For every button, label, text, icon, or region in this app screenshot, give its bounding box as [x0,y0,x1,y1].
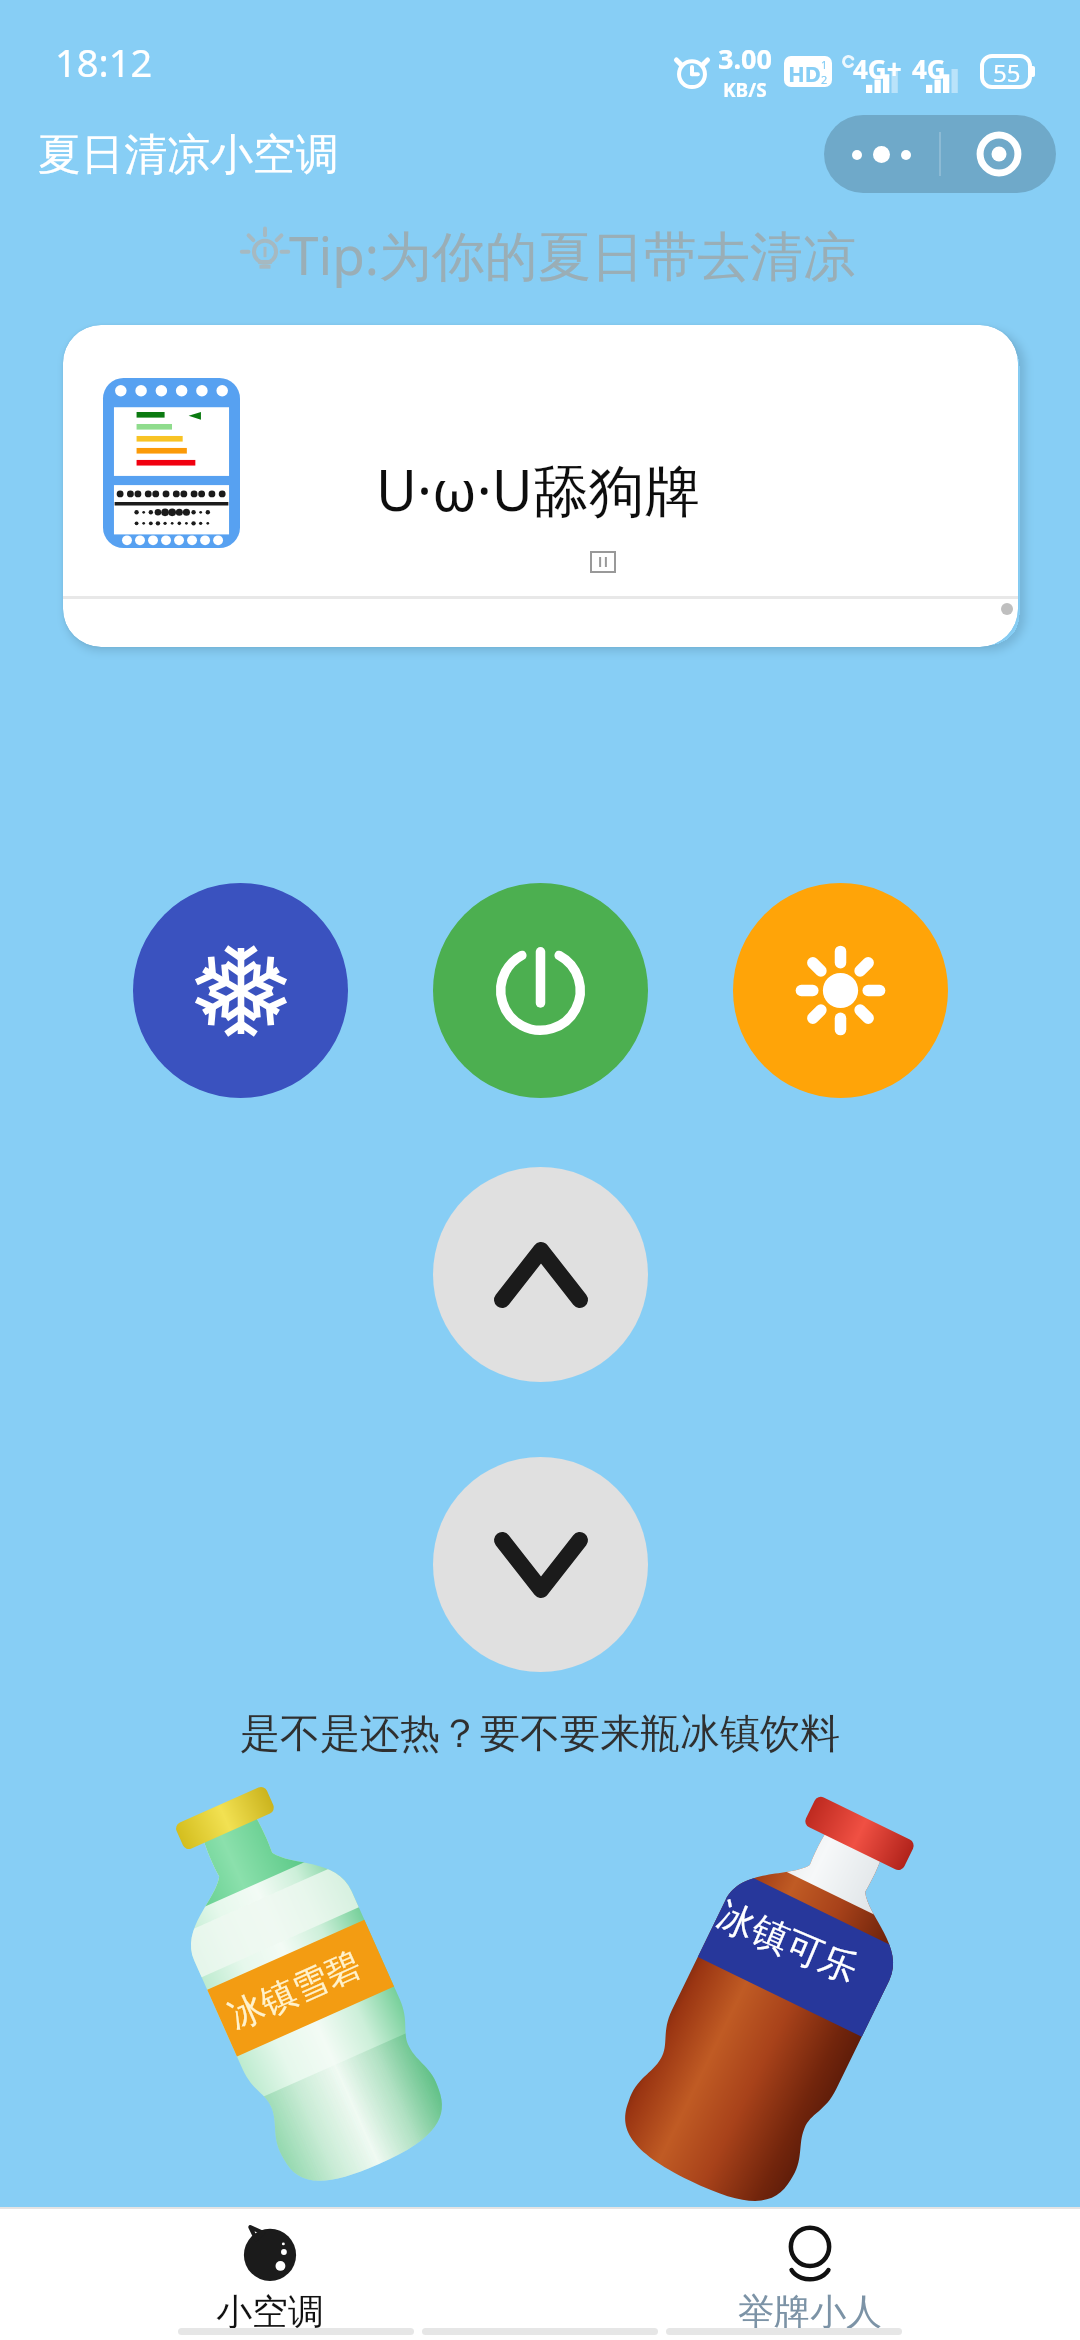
staticText: 4G+ [853,51,902,86]
staticText: 夏日清凉小空调 [38,128,339,182]
button[interactable]: Close [941,115,1056,193]
button[interactable]: U·ω·U舔狗牌 [63,325,1018,647]
button[interactable]: 小空调 [0,2209,540,2328]
staticText: HD [788,58,821,85]
button[interactable]: Heat mode [733,883,948,1098]
button[interactable]: 冰镇可乐 [664,1798,892,2203]
staticText: 小空调 [216,2289,324,2328]
staticText: 举牌小人 [738,2289,882,2328]
staticText: 冰镇雪碧 [222,1942,367,2039]
button[interactable]: Increase temperature [433,1167,648,1382]
button[interactable]: Cool mode [133,883,348,1098]
button[interactable]: 举牌小人 [540,2209,1080,2328]
button[interactable]: Decrease temperature [433,1457,648,1672]
staticText: 冰镇可乐 [710,1892,865,1993]
staticText: U·ω·U舔狗牌 [376,451,701,527]
staticText: 3.00 [718,40,772,77]
staticText: 2 [821,72,828,84]
staticText: Tip:为你的夏日带去清凉 [289,218,856,290]
button[interactable]: 冰镇雪碧 [192,1788,407,2183]
staticText: 4G [912,51,946,86]
staticText: 18:12 [55,36,153,88]
button[interactable]: More options [824,115,939,193]
staticText: 55 [993,56,1021,87]
staticText: 1 [821,57,828,72]
staticText: 是不是还热？要不要来瓶冰镇饮料 [0,1708,1080,1758]
staticText: KB/S [723,77,767,103]
button[interactable]: Power [433,883,648,1098]
